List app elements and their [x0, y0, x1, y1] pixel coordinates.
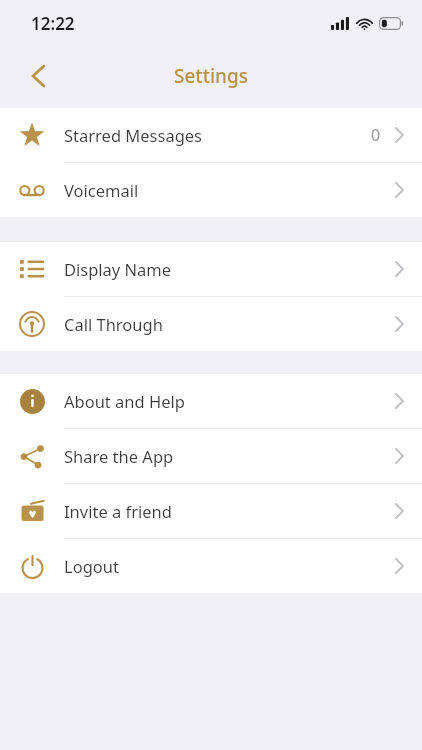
button[interactable]: Logout: [0, 539, 422, 593]
staticText: 12:22: [31, 12, 75, 35]
button[interactable]: Call Through: [0, 297, 422, 351]
button[interactable]: Back: [14, 52, 62, 100]
button[interactable]: About and Help: [0, 374, 422, 428]
button[interactable]: Voicemail: [0, 163, 422, 217]
staticText: Settings: [174, 63, 248, 89]
staticText: Starred Messages: [64, 124, 371, 146]
button[interactable]: Invite a friend: [0, 484, 422, 538]
staticText: Display Name: [64, 258, 395, 280]
staticText: Voicemail: [64, 179, 395, 201]
button[interactable]: Starred Messages: [0, 108, 422, 162]
staticText: 0: [371, 124, 381, 146]
staticText: About and Help: [64, 390, 395, 412]
staticText: Share the App: [64, 445, 395, 467]
button[interactable]: Share the App: [0, 429, 422, 483]
staticText: Logout: [64, 555, 395, 577]
button[interactable]: Display Name: [0, 242, 422, 296]
staticText: Invite a friend: [64, 500, 395, 522]
staticText: Call Through: [64, 313, 395, 335]
